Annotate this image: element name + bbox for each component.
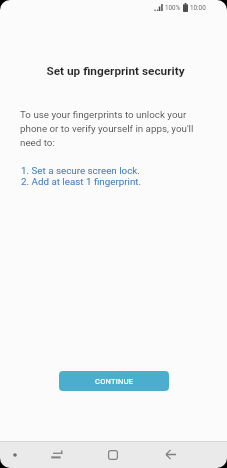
staticText: To use your fingerprints to unlock your … [20,109,194,148]
staticText: 100% [165,4,181,11]
staticText: CONTINUE [95,377,134,386]
button[interactable]: CONTINUE [59,371,169,391]
button[interactable] [101,441,124,468]
staticText: 10:00 [190,4,206,11]
button[interactable] [159,441,182,468]
button[interactable]: 1. Set a secure screen lock. [21,165,140,176]
button[interactable] [45,441,69,468]
button[interactable]: 2. Add at least 1 fingerprint. [21,176,142,187]
staticText: Set up fingerprint security [46,64,185,78]
